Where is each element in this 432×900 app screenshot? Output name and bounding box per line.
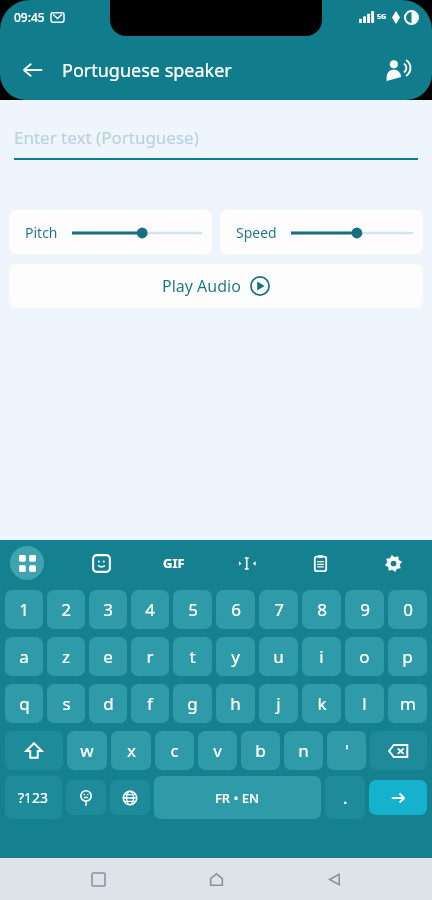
button[interactable]: 1 xyxy=(5,590,43,629)
staticText: l xyxy=(362,692,367,715)
button[interactable]: j xyxy=(259,684,298,723)
button[interactable]: ' xyxy=(327,731,366,770)
button[interactable]: 6 xyxy=(216,590,255,629)
button[interactable]: l xyxy=(345,684,384,723)
staticText: 5G xyxy=(377,12,387,22)
staticText: k xyxy=(317,692,327,715)
button[interactable]: g xyxy=(173,684,212,723)
staticText: n xyxy=(298,739,309,762)
staticText: ' xyxy=(345,739,349,762)
staticText: j xyxy=(276,692,281,715)
staticText: Play Audio xyxy=(162,275,241,297)
button[interactable]: 0 xyxy=(388,590,427,629)
button[interactable]: w xyxy=(67,731,107,770)
button[interactable]: Enter text (Portuguese) xyxy=(14,126,418,160)
staticText: v xyxy=(213,739,222,762)
button[interactable]: r xyxy=(131,637,169,676)
button[interactable]: Settings xyxy=(376,546,410,580)
button[interactable]: Speed xyxy=(220,210,423,254)
button[interactable]: b xyxy=(241,731,280,770)
button[interactable]: 9 xyxy=(345,590,384,629)
button[interactable]: Shift xyxy=(5,731,63,770)
button[interactable]: 4 xyxy=(131,590,169,629)
staticText: i xyxy=(319,645,324,668)
staticText: e xyxy=(103,645,113,668)
staticText: o xyxy=(359,645,370,668)
button[interactable]: v xyxy=(198,731,237,770)
button[interactable]: y xyxy=(216,637,255,676)
staticText: Portuguese speaker xyxy=(62,58,232,83)
staticText: x xyxy=(127,739,136,762)
button[interactable]: c xyxy=(155,731,194,770)
button[interactable]: 3 xyxy=(89,590,127,629)
button[interactable]: FR • EN xyxy=(154,776,321,819)
staticText: 9 xyxy=(360,598,370,621)
staticText: a xyxy=(19,645,29,668)
button[interactable]: n xyxy=(284,731,323,770)
button[interactable]: h xyxy=(216,684,255,723)
button[interactable]: k xyxy=(302,684,341,723)
button[interactable]: 7 xyxy=(259,590,298,629)
button[interactable]: 8 xyxy=(302,590,341,629)
staticText: GIF xyxy=(163,554,185,572)
button[interactable]: e xyxy=(89,637,127,676)
button[interactable]: Enter xyxy=(369,780,427,815)
staticText: . xyxy=(343,786,348,809)
button[interactable]: s xyxy=(47,684,85,723)
button[interactable]: 2 xyxy=(47,590,85,629)
button[interactable]: Emoji xyxy=(66,780,106,815)
staticText: g xyxy=(187,692,198,715)
staticText: f xyxy=(147,692,153,715)
button[interactable]: q xyxy=(5,684,43,723)
staticText: Pitch xyxy=(25,223,58,242)
button[interactable]: Home xyxy=(196,859,236,899)
button[interactable]: t xyxy=(173,637,212,676)
staticText: z xyxy=(62,645,70,668)
staticText: r xyxy=(146,645,154,668)
staticText: m xyxy=(400,692,416,715)
staticText: Enter text (Portuguese) xyxy=(14,126,199,149)
button[interactable]: a xyxy=(5,637,43,676)
button[interactable]: Play Audio xyxy=(9,264,423,308)
staticText: p xyxy=(402,645,413,668)
button[interactable]: d xyxy=(89,684,127,723)
button[interactable]: p xyxy=(388,637,427,676)
button[interactable]: Pitch xyxy=(9,210,212,254)
staticText: u xyxy=(273,645,284,668)
button[interactable]: Back xyxy=(14,51,52,89)
button[interactable]: z xyxy=(47,637,85,676)
button[interactable]: ?123 xyxy=(5,776,62,819)
staticText: ?123 xyxy=(18,788,49,807)
button[interactable]: Recents xyxy=(78,859,118,899)
staticText: 5 xyxy=(188,598,198,621)
button[interactable]: Language xyxy=(110,780,150,815)
staticText: FR • EN xyxy=(215,789,260,807)
button[interactable]: 5 xyxy=(173,590,212,629)
button[interactable]: . xyxy=(325,776,365,819)
staticText: t xyxy=(189,645,196,668)
button[interactable]: m xyxy=(388,684,427,723)
button[interactable]: o xyxy=(345,637,384,676)
button[interactable]: Back xyxy=(314,859,354,899)
staticText: 0 xyxy=(403,598,413,621)
button[interactable]: i xyxy=(302,637,341,676)
button[interactable]: u xyxy=(259,637,298,676)
staticText: 09:45 xyxy=(14,9,45,25)
button[interactable]: Apps xyxy=(10,546,44,580)
staticText: b xyxy=(255,739,266,762)
button[interactable]: Backspace xyxy=(370,731,427,770)
staticText: 6 xyxy=(231,598,241,621)
button[interactable]: Voice xyxy=(378,50,418,90)
button[interactable]: Text edit xyxy=(230,546,264,580)
button[interactable]: f xyxy=(131,684,169,723)
staticText: 1 xyxy=(19,598,29,621)
button[interactable]: Sticker xyxy=(84,546,118,580)
staticText: 3 xyxy=(103,598,113,621)
staticText: d xyxy=(103,692,114,715)
staticText: s xyxy=(62,692,71,715)
button[interactable]: Clipboard xyxy=(303,546,337,580)
staticText: c xyxy=(170,739,179,762)
staticText: 2 xyxy=(61,598,71,621)
button[interactable]: x xyxy=(111,731,151,770)
button[interactable]: GIF xyxy=(157,546,191,580)
